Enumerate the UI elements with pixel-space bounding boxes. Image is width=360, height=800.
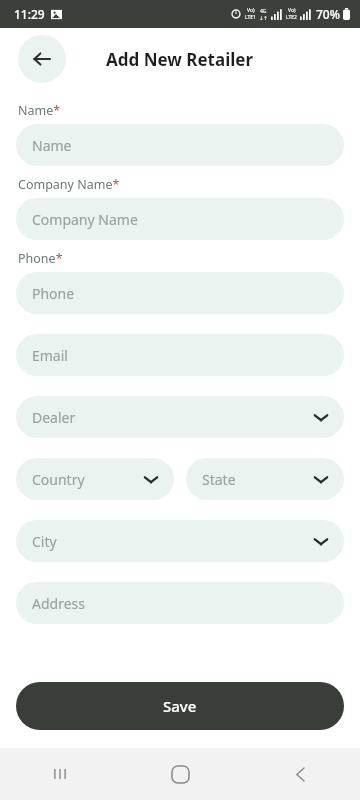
button[interactable]: Company Name [16,198,344,240]
staticText: Vo) [288,7,296,14]
staticText: Phone [32,284,75,303]
staticText: State [202,470,236,489]
button[interactable]: State [186,458,344,500]
button[interactable]: Name [16,124,344,166]
button[interactable]: Address [16,582,344,624]
staticText: Country [32,470,85,489]
staticText: Company Name [32,210,138,229]
staticText: LTE1 [245,14,256,21]
button[interactable]: Email [16,334,344,376]
staticText: Dealer [32,408,76,427]
button[interactable]: Back [18,35,66,83]
staticText: Name* [18,102,61,119]
button[interactable]: Home [120,748,240,800]
staticText: Vo) [247,7,255,14]
staticText: Company Name* [18,176,120,193]
staticText: City [32,532,57,551]
staticText: ↓↑ [259,15,268,21]
staticText: Add New Retailer [106,48,254,71]
button[interactable]: Dealer [16,396,344,438]
button[interactable]: Back [240,748,360,800]
staticText: Address [32,594,85,613]
button[interactable]: Save [16,682,344,730]
staticText: Phone* [18,250,63,267]
staticText: Save [163,696,197,716]
staticText: 11:29 [14,6,45,22]
staticText: LTE2 [286,14,297,21]
button[interactable]: Country [16,458,174,500]
button[interactable]: City [16,520,344,562]
staticText: Email [32,346,68,365]
button[interactable]: Recent apps [0,748,120,800]
button[interactable]: Phone [16,272,344,314]
staticText: 70% [316,6,340,22]
staticText: Name [32,136,72,155]
staticText: 4G [260,8,267,15]
